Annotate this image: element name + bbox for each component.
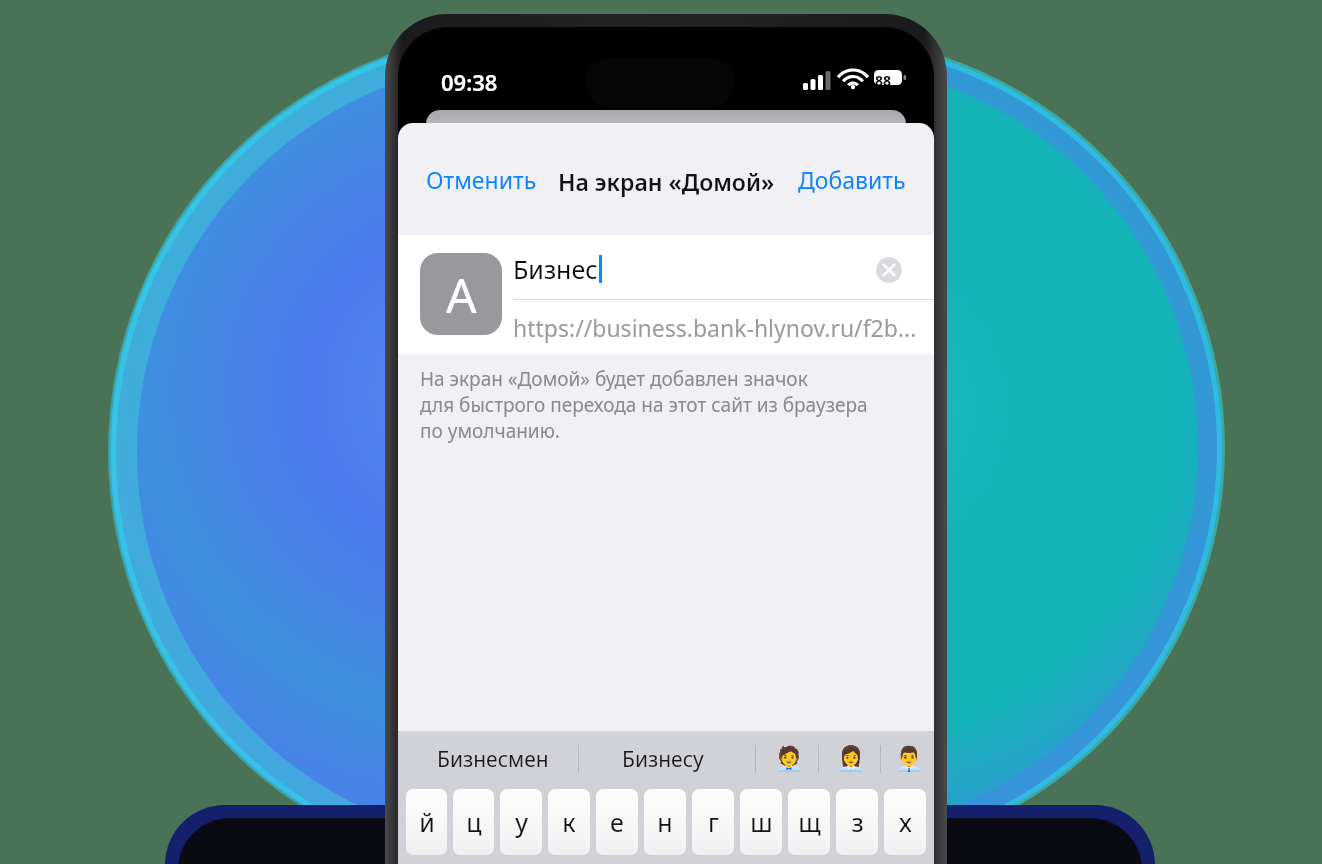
button[interactable]: й <box>406 789 447 855</box>
button[interactable]: г <box>692 789 734 855</box>
staticText: 👩‍💼 <box>836 745 866 773</box>
staticText: г <box>708 805 719 839</box>
button[interactable]: ц <box>453 789 494 855</box>
staticText: й <box>419 805 435 839</box>
staticText: Бизнес <box>513 252 598 286</box>
staticText: A <box>446 262 477 327</box>
staticText: 88 <box>875 71 892 90</box>
staticText: у <box>515 805 528 839</box>
staticText: к <box>562 805 576 839</box>
button[interactable]: Бизнесу <box>583 731 743 787</box>
staticText: х <box>899 805 912 839</box>
button[interactable]: к <box>548 789 590 855</box>
button[interactable]: Эмодзи <box>822 731 880 787</box>
staticText: Бизнесмен <box>437 745 549 774</box>
button[interactable]: х <box>884 789 926 855</box>
staticText: Добавить <box>798 164 906 195</box>
staticText: н <box>657 805 673 839</box>
button[interactable]: н <box>644 789 686 855</box>
staticText: На экран «Домой» будет добавлен значок д… <box>420 366 868 444</box>
button[interactable]: Очистить <box>876 257 902 283</box>
button[interactable]: ш <box>740 789 782 855</box>
button[interactable]: щ <box>788 789 830 855</box>
button[interactable]: Бизнес <box>513 243 873 295</box>
staticText: На экран «Домой» <box>558 166 775 197</box>
staticText: 👨‍💼 <box>894 745 924 773</box>
staticText: https://business.bank-hlynov.ru/f2b... <box>513 312 917 343</box>
staticText: ш <box>750 805 773 839</box>
staticText: ц <box>466 805 482 839</box>
button[interactable]: Эмодзи <box>760 731 818 787</box>
staticText: з <box>851 805 864 839</box>
button[interactable]: з <box>836 789 878 855</box>
button[interactable]: у <box>500 789 542 855</box>
staticText: Отменить <box>426 164 537 195</box>
staticText: Бизнесу <box>622 745 704 774</box>
button[interactable]: е <box>596 789 638 855</box>
staticText: е <box>610 805 624 839</box>
button[interactable]: Добавить <box>786 156 918 203</box>
button[interactable]: Бизнесмен <box>408 731 578 787</box>
staticText: 09:38 <box>441 67 498 97</box>
staticText: 🧑‍💼 <box>774 745 804 773</box>
staticText: щ <box>798 805 821 839</box>
button[interactable]: Эмодзи <box>884 731 934 787</box>
button[interactable]: Отменить <box>414 156 549 203</box>
